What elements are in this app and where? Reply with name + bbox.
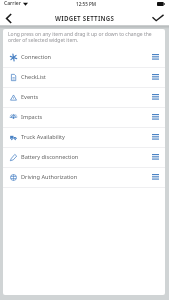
button[interactable]: Events (3, 88, 165, 108)
staticText: CheckList (21, 73, 46, 81)
button[interactable]: CheckList (3, 68, 165, 88)
staticText: WIDGET SETTINGS (55, 14, 115, 22)
staticText: 12:55 PM (76, 1, 97, 7)
staticText: Impacts (21, 113, 43, 121)
button[interactable]: Truck Availability (3, 128, 165, 148)
staticText: Driving Authorization (21, 173, 78, 181)
button[interactable]: Confirm (151, 11, 165, 25)
button[interactable]: Back (1, 11, 15, 25)
button[interactable]: Driving Authorization (3, 168, 165, 188)
staticText: Carrier (4, 0, 21, 7)
button[interactable]: Impacts (3, 108, 165, 128)
staticText: Battery disconnection (21, 153, 79, 161)
staticText: Events (21, 93, 39, 101)
staticText: Connection (21, 53, 51, 61)
staticText: Truck Availability (21, 133, 65, 141)
button[interactable]: Connection (3, 48, 165, 68)
staticText: Long press on any item and drag it up or… (8, 31, 161, 44)
button[interactable]: Battery disconnection (3, 148, 165, 168)
